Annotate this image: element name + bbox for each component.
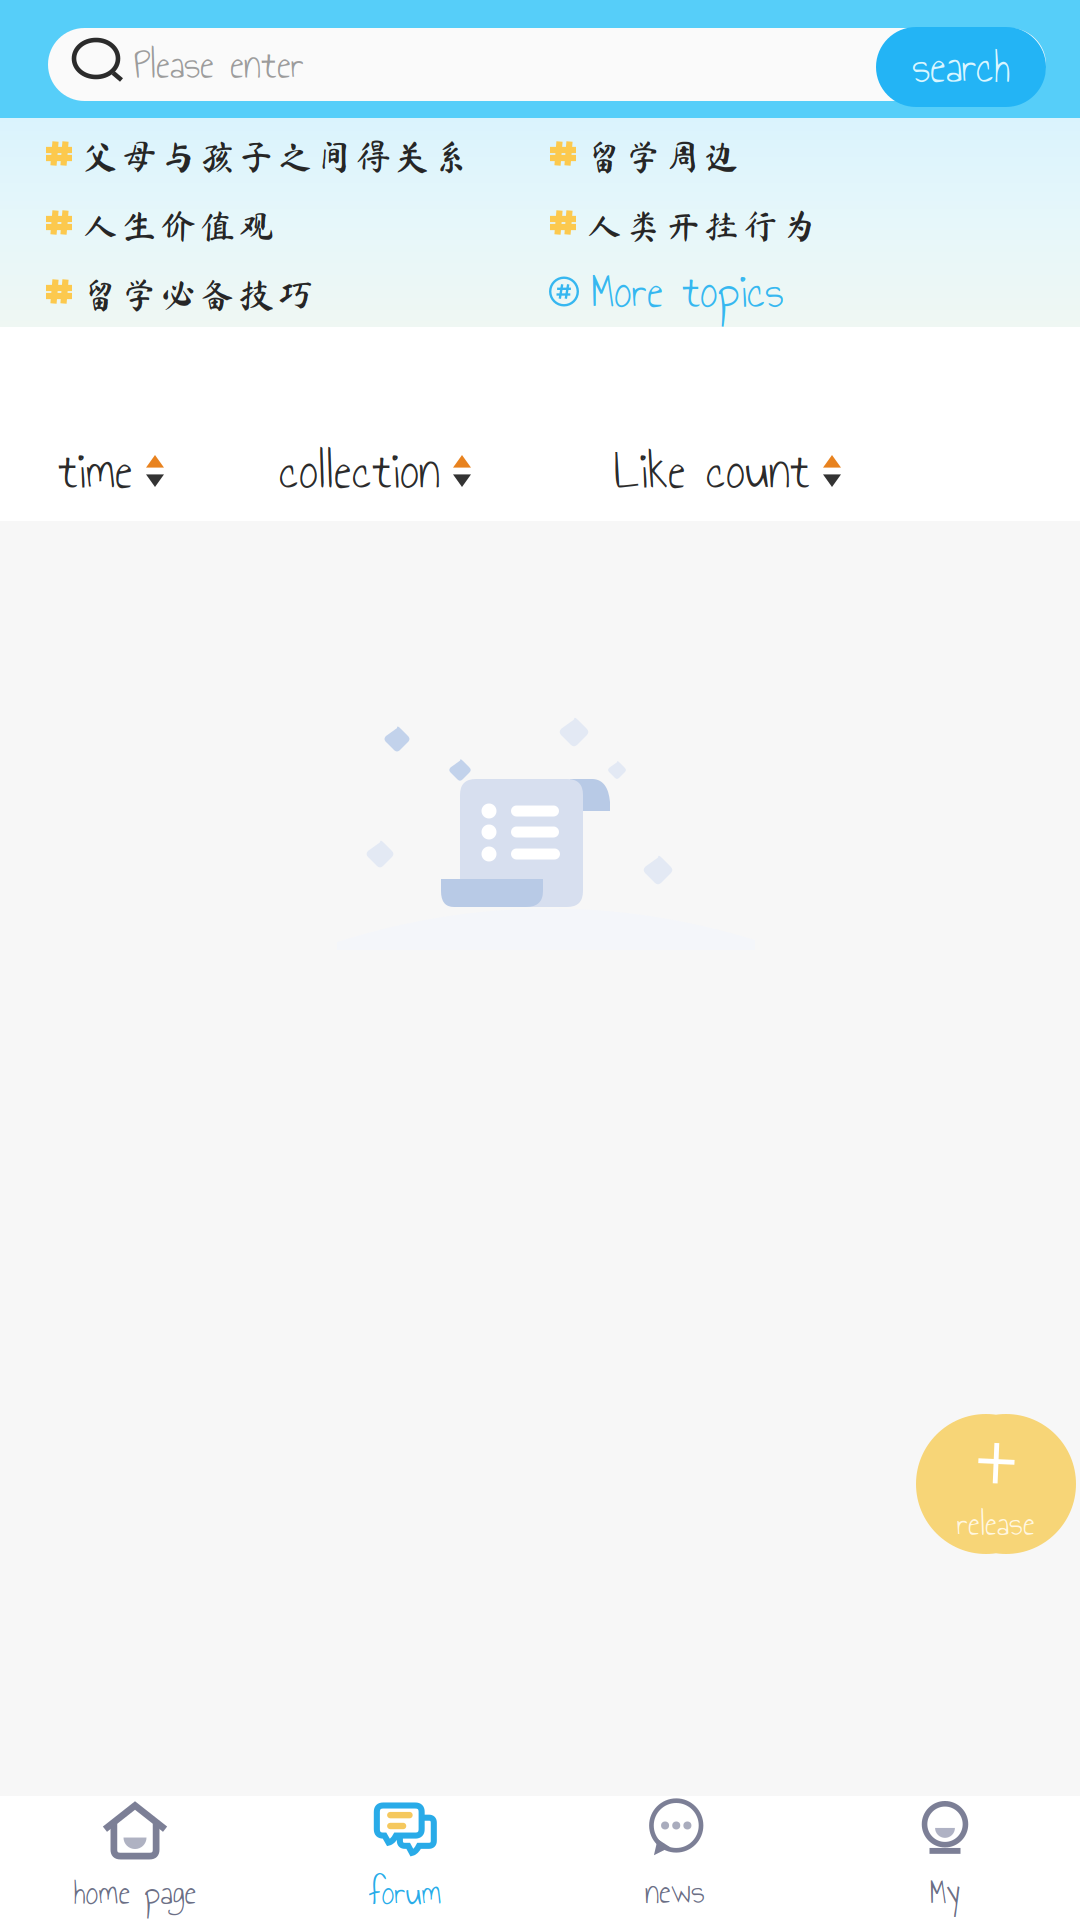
button[interactable]: 留学必备技巧 xyxy=(45,257,549,326)
staticText: 父母与孩子之间得关系 xyxy=(83,139,469,174)
staticText: time xyxy=(58,433,133,509)
staticText: forum xyxy=(368,1867,441,1919)
button[interactable]: search xyxy=(876,27,1046,107)
staticText: collection xyxy=(279,433,440,509)
button[interactable]: Like count xyxy=(614,439,842,503)
button[interactable]: More topics xyxy=(549,257,1029,326)
button[interactable]: My xyxy=(810,1796,1080,1920)
staticText: 留学必备技巧 xyxy=(83,277,313,312)
button[interactable]: home page xyxy=(0,1796,270,1920)
staticText: release xyxy=(957,1498,1035,1550)
button[interactable]: forum xyxy=(270,1796,540,1920)
staticText: 人类开挂行为 xyxy=(587,208,817,243)
staticText: More topics xyxy=(591,256,784,327)
button[interactable]: time xyxy=(58,439,165,503)
button[interactable]: news xyxy=(540,1796,810,1920)
button[interactable]: 留学周边 xyxy=(549,119,1029,188)
button[interactable]: collection xyxy=(279,439,472,503)
staticText: 留学周边 xyxy=(587,139,739,174)
staticText: news xyxy=(645,1866,705,1918)
staticText: Like count xyxy=(614,433,810,509)
staticText: search xyxy=(912,33,1010,101)
button[interactable]: release xyxy=(916,1414,1076,1554)
button[interactable]: 人生价值观 xyxy=(45,188,549,257)
button[interactable]: 父母与孩子之间得关系 xyxy=(45,119,549,188)
staticText: home page xyxy=(73,1867,196,1919)
staticText: Please enter xyxy=(134,34,304,95)
staticText: 人生价值观 xyxy=(83,208,274,243)
button[interactable]: 人类开挂行为 xyxy=(549,188,1029,257)
staticText: My xyxy=(929,1866,960,1918)
